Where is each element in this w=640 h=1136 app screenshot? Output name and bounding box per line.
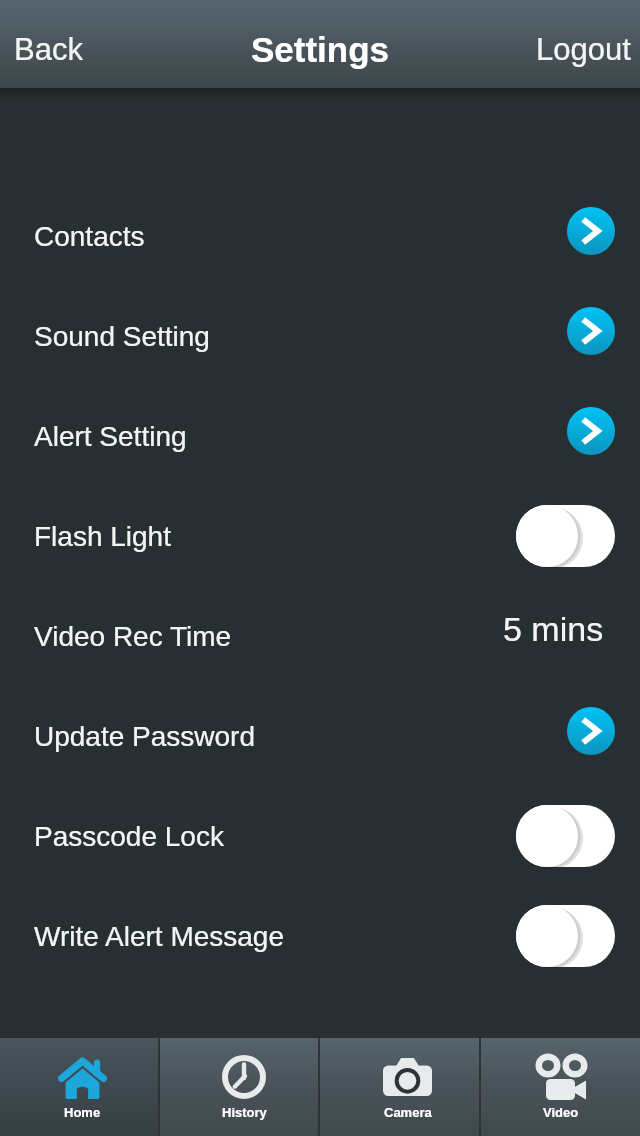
button[interactable]: Camera	[320, 1038, 479, 1136]
staticText: Settings	[251, 30, 390, 69]
button[interactable]: Open	[567, 407, 615, 455]
staticText: Video Rec Time	[34, 621, 232, 652]
button[interactable]: Write Alert Message	[0, 886, 640, 986]
staticText: 5 mins	[503, 610, 604, 648]
staticText: Update Password	[34, 721, 256, 752]
button[interactable]: Toggle	[516, 805, 615, 867]
staticText: Write Alert Message	[34, 921, 285, 952]
button[interactable]: Update Password	[0, 686, 640, 786]
staticText: Home	[64, 1105, 101, 1120]
staticText: History	[222, 1105, 267, 1120]
staticText: Alert Setting	[34, 421, 187, 452]
staticText: Flash Light	[34, 521, 171, 552]
button[interactable]: Contacts	[0, 186, 640, 286]
staticText: Camera	[384, 1105, 432, 1120]
button[interactable]: Open	[567, 207, 615, 255]
button[interactable]: History	[160, 1038, 318, 1136]
button[interactable]: Open	[567, 707, 615, 755]
button[interactable]: Video	[481, 1038, 640, 1136]
staticText: Sound Setting	[34, 321, 210, 352]
button[interactable]: Home	[0, 1038, 158, 1136]
button[interactable]: Toggle	[516, 505, 615, 567]
button[interactable]: Flash Light	[0, 486, 640, 586]
button[interactable]: Back	[5, 23, 92, 76]
staticText: Logout	[536, 32, 631, 67]
button[interactable]: Alert Setting	[0, 386, 640, 486]
button[interactable]: Video Rec Time	[0, 586, 640, 686]
staticText: Back	[14, 32, 83, 67]
button[interactable]: Sound Setting	[0, 286, 640, 386]
staticText: Passcode Lock	[34, 821, 224, 852]
button[interactable]: Passcode Lock	[0, 786, 640, 886]
button[interactable]: Logout	[527, 23, 640, 76]
button[interactable]: Open	[567, 307, 615, 355]
staticText: Contacts	[34, 221, 145, 252]
button[interactable]: Toggle	[516, 905, 615, 967]
staticText: Video	[543, 1105, 579, 1120]
